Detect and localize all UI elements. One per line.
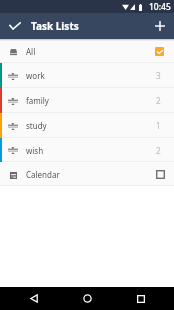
button[interactable]: Calendar <box>0 162 174 186</box>
button[interactable]: wish <box>0 138 174 162</box>
button[interactable]: work <box>0 63 174 88</box>
staticText: 10:45 <box>149 1 171 13</box>
button[interactable]: Home <box>67 287 107 310</box>
staticText: Calendar <box>26 169 60 180</box>
staticText: 2 <box>156 95 161 106</box>
staticText: 3 <box>156 70 161 81</box>
button[interactable]: Add list <box>147 13 173 39</box>
button[interactable]: study <box>0 113 174 138</box>
staticText: Task Lists <box>31 19 79 33</box>
staticText: study <box>26 120 47 131</box>
staticText: family <box>26 95 49 106</box>
staticText: All <box>26 46 36 57</box>
button[interactable]: Recent apps <box>121 287 161 310</box>
staticText: wish <box>26 145 44 156</box>
staticText: 1 <box>156 120 161 131</box>
button[interactable]: Back <box>14 287 54 310</box>
staticText: 2 <box>156 145 161 156</box>
button[interactable]: Confirm <box>0 13 29 39</box>
staticText: work <box>26 70 45 81</box>
button[interactable]: All <box>0 39 174 63</box>
button[interactable]: family <box>0 88 174 113</box>
